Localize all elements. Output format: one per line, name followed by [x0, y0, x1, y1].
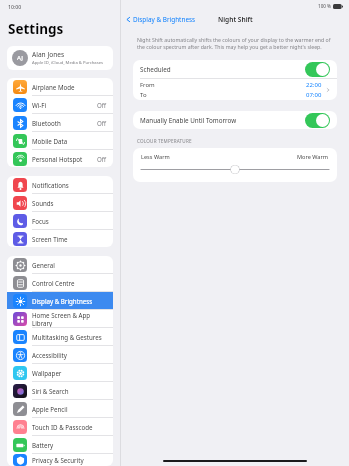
button[interactable]: Manually Enable Until Tomorrow — [133, 111, 337, 129]
staticText: Night Shift automatically shifts the col… — [137, 36, 333, 50]
other: Siri & Search — [13, 384, 27, 398]
other: Notifications — [13, 178, 27, 192]
button[interactable]: Focus — [7, 212, 113, 229]
other: Wallpaper — [13, 366, 27, 380]
staticText: Off — [97, 155, 107, 163]
button[interactable]: Personal Hotspot — [7, 150, 113, 167]
staticText: Off — [97, 101, 107, 109]
other: Focus — [13, 214, 27, 228]
button[interactable]: Less Warm — [133, 148, 337, 182]
other: Control Centre — [13, 276, 27, 290]
button[interactable]: Touch ID & Passcode — [7, 418, 113, 435]
staticText: 100 % — [318, 3, 331, 9]
other: General — [13, 258, 27, 272]
button[interactable]: Battery — [7, 436, 113, 453]
staticText: Control Centre — [32, 279, 107, 287]
staticText: 10:00 — [8, 3, 22, 10]
button[interactable]: Airplane Mode — [7, 78, 113, 95]
staticText: Less Warm — [141, 153, 297, 161]
button[interactable]: Screen Time — [7, 230, 113, 247]
button[interactable]: Sounds — [7, 194, 113, 211]
button[interactable]: Notifications — [7, 176, 113, 193]
other: Back — [126, 17, 131, 22]
staticText: Focus — [32, 217, 107, 225]
other: Home Screen & App Library — [13, 312, 27, 326]
staticText: To — [140, 91, 147, 99]
other: Battery — [13, 438, 27, 452]
button[interactable]: Siri & Search — [7, 382, 113, 399]
staticText: Touch ID & Passcode — [32, 423, 107, 431]
staticText: From — [140, 81, 155, 89]
button[interactable]: Wallpaper — [7, 364, 113, 381]
button[interactable]: Back — [126, 15, 196, 24]
staticText: Multitasking & Gestures — [32, 333, 107, 341]
button[interactable]: Privacy & Security — [7, 454, 113, 466]
staticText: Display & Brightness — [32, 297, 107, 305]
staticText: Mobile Data — [32, 137, 107, 145]
other: Sounds — [13, 196, 27, 210]
staticText: General — [32, 261, 107, 269]
staticText: Personal Hotspot — [32, 155, 97, 163]
staticText: Home Screen & App Library — [32, 311, 107, 327]
button[interactable]: Control Centre — [7, 274, 113, 291]
staticText: 22:00 — [306, 81, 322, 89]
other: Apple Pencil — [13, 402, 27, 416]
other: Bluetooth — [13, 116, 27, 130]
button[interactable]: Mobile Data — [7, 132, 113, 149]
staticText: Notifications — [32, 181, 107, 189]
staticText: Apple ID, iCloud, Media & Purchases — [32, 60, 104, 66]
staticText: 07:00 — [306, 91, 322, 99]
other: Multitasking & Gestures — [13, 330, 27, 344]
staticText: Battery — [32, 441, 107, 449]
staticText: Wi-Fi — [32, 101, 97, 109]
staticText: Scheduled — [140, 65, 305, 74]
staticText: Screen Time — [32, 235, 107, 243]
other: Mobile Data — [13, 134, 27, 148]
other: Airplane Mode — [13, 80, 27, 94]
staticText: Siri & Search — [32, 387, 107, 395]
button[interactable]: Display & Brightness — [7, 292, 113, 309]
button[interactable]: Manually Enable Until Tomorrow — [305, 113, 330, 128]
button[interactable]: Apple Pencil — [7, 400, 113, 417]
staticText: Night Shift — [218, 15, 253, 24]
staticText: Manually Enable Until Tomorrow — [140, 116, 305, 125]
staticText: COLOUR TEMPERATURE — [137, 138, 192, 144]
button[interactable]: Bluetooth — [7, 114, 113, 131]
staticText: Apple Pencil — [32, 405, 107, 413]
staticText: Sounds — [32, 199, 107, 207]
button[interactable]: AJ — [7, 46, 113, 70]
button[interactable]: Accessibility — [7, 346, 113, 363]
other: Touch ID & Passcode — [13, 420, 27, 434]
button[interactable]: Home Screen & App Library — [7, 310, 113, 327]
button[interactable]: General — [7, 256, 113, 273]
other: Personal Hotspot — [13, 152, 27, 166]
staticText: Display & Brightness — [133, 15, 196, 24]
other: Accessibility — [13, 348, 27, 362]
button[interactable]: From — [133, 79, 337, 100]
staticText: AJ — [17, 54, 23, 62]
staticText: More Warm — [297, 153, 329, 161]
staticText: Privacy & Security — [32, 456, 107, 464]
staticText: Accessibility — [32, 351, 107, 359]
other: Display & Brightness — [13, 294, 27, 308]
other: Privacy & Security — [13, 454, 27, 466]
staticText: Alan Jones — [32, 50, 65, 59]
button[interactable]: Wi-Fi — [7, 96, 113, 113]
button[interactable]: Scheduled — [305, 62, 330, 77]
staticText: Bluetooth — [32, 119, 97, 127]
staticText: Off — [97, 119, 107, 127]
other: Screen Time — [13, 232, 27, 246]
staticText: Settings — [8, 20, 64, 38]
staticText: Wallpaper — [32, 369, 107, 377]
other: Wi-Fi — [13, 98, 27, 112]
button[interactable]: Scheduled — [133, 60, 337, 78]
button[interactable]: Multitasking & Gestures — [7, 328, 113, 345]
staticText: Airplane Mode — [32, 83, 107, 91]
